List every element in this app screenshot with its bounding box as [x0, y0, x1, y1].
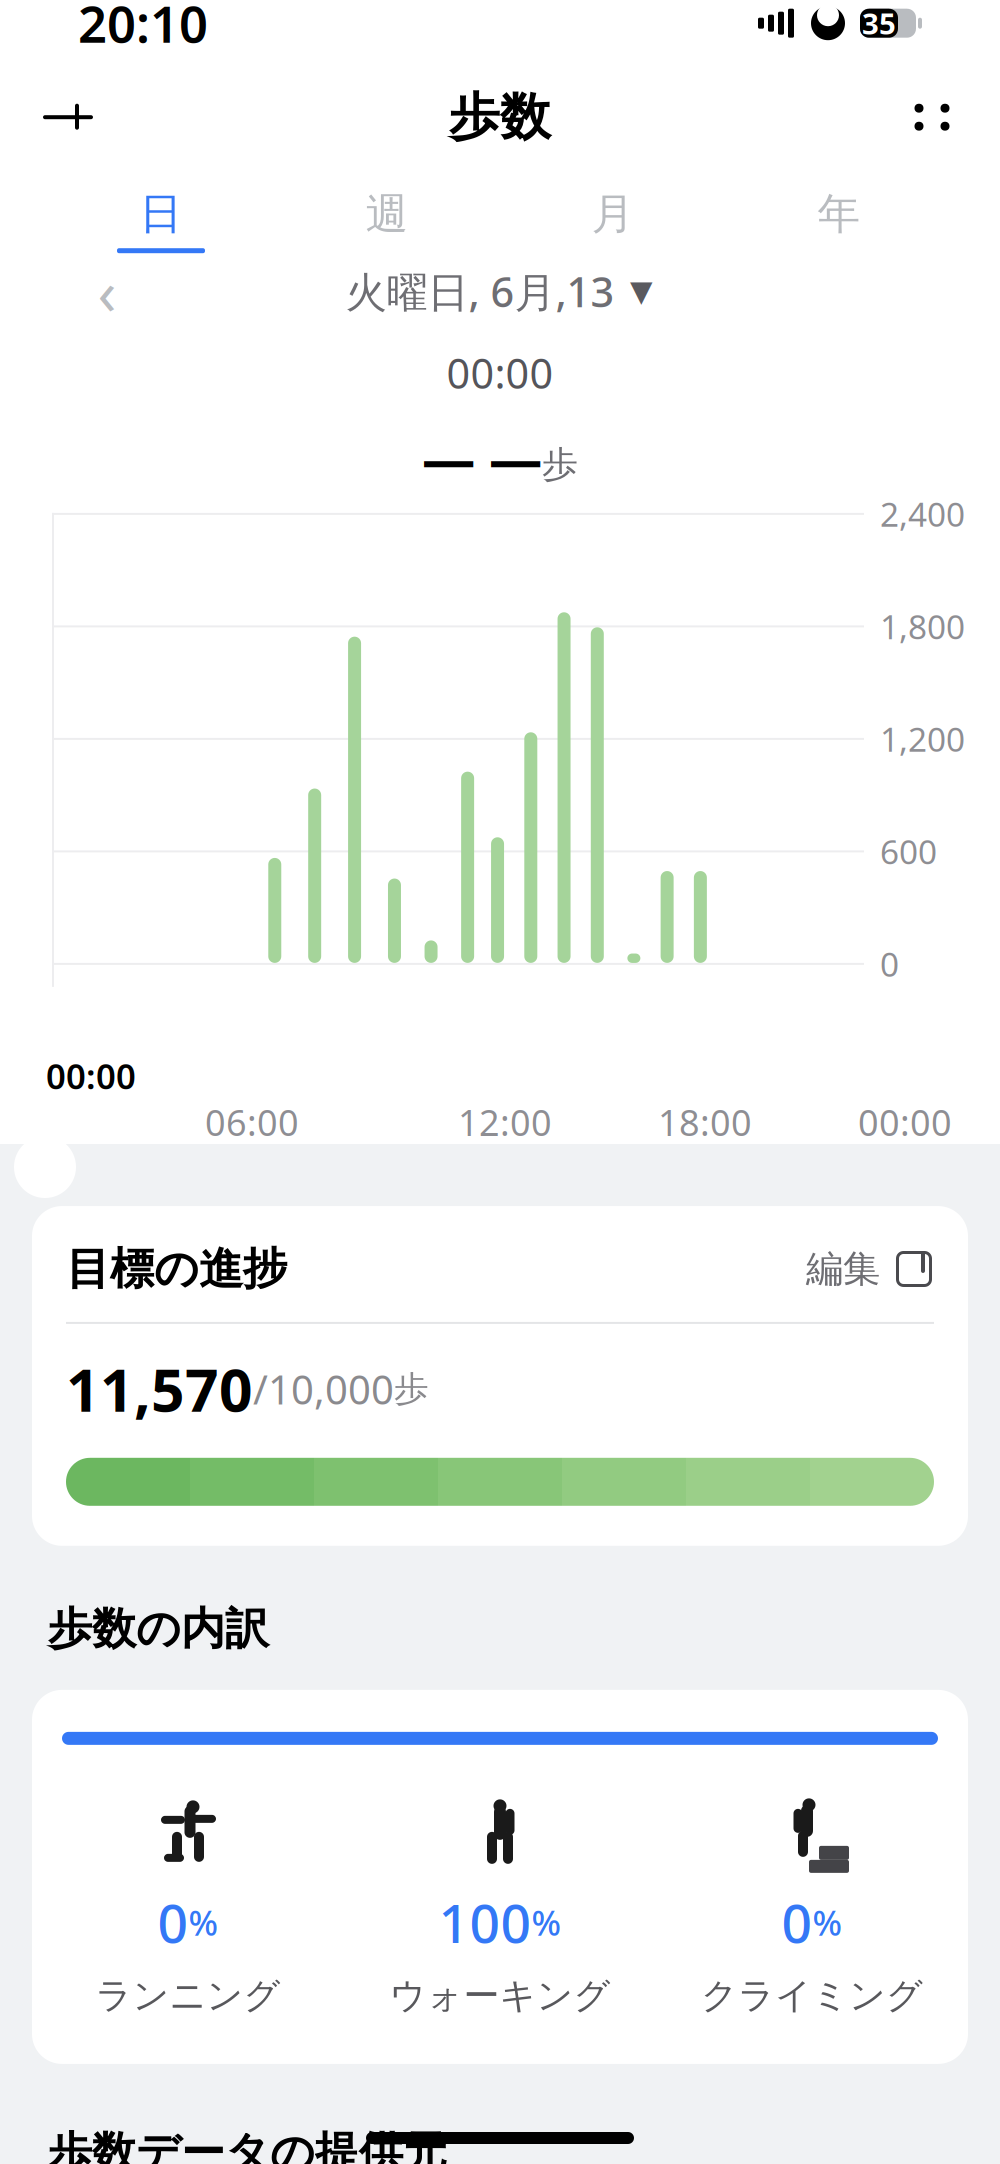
button[interactable]: 戻る [28, 77, 108, 157]
button[interactable]: 火曜日, 6月,13 [325, 256, 674, 326]
staticText: 火曜日, 6月,13 [345, 264, 614, 319]
staticText: 歩数データの提供元 [48, 2126, 447, 2164]
staticText: 編集 [806, 1246, 880, 1292]
staticText: 歩数 [449, 86, 551, 148]
staticText: 2,400 [880, 492, 965, 536]
staticText: 00:00 [46, 1053, 136, 1099]
staticText: 目標の進捗 [66, 1242, 287, 1296]
button[interactable]: 年 [726, 163, 952, 253]
staticText: 00:00 [446, 345, 553, 400]
staticText: 18:00 [658, 1098, 752, 1146]
staticText: — — [422, 422, 542, 493]
staticText: % [531, 1899, 561, 1945]
staticText: 00:00 [858, 1098, 952, 1146]
staticText: 06:00 [205, 1098, 299, 1146]
button[interactable]: その他のオプション [892, 77, 972, 157]
staticText: 年 [817, 188, 860, 240]
staticText: 12:00 [458, 1098, 552, 1146]
button[interactable]: 編集 [806, 1240, 934, 1298]
staticText: 0 [880, 942, 899, 986]
staticText: 日 [139, 188, 182, 240]
button[interactable]: 日 [48, 163, 274, 253]
staticText: % [812, 1899, 842, 1945]
staticText: 0 [781, 1887, 812, 1958]
staticText: 100 [438, 1887, 531, 1958]
staticText: 20:10 [78, 0, 208, 57]
staticText: ウォーキング [389, 1974, 610, 2018]
staticText: ランニング [95, 1974, 280, 2018]
staticText: 歩 [394, 1368, 429, 1410]
staticText: 歩数の内訳 [48, 1602, 269, 1656]
staticText: 月 [591, 188, 634, 240]
staticText: 1,200 [880, 717, 965, 761]
staticText: ▼ [630, 275, 653, 308]
staticText: クライミング [701, 1974, 923, 2018]
staticText: ‹ [97, 250, 116, 332]
staticText: 600 [880, 829, 937, 874]
staticText: % [188, 1899, 218, 1945]
staticText: 歩 [542, 442, 578, 487]
staticText: 1,800 [880, 604, 965, 649]
staticText: /10,000 [253, 1362, 394, 1415]
button[interactable]: 前の日 [72, 256, 142, 326]
button[interactable]: 週 [274, 163, 500, 253]
staticText: 35 [862, 4, 896, 43]
staticText: 11,570 [66, 1350, 253, 1428]
staticText: 週 [365, 188, 408, 240]
button[interactable]: 月 [500, 163, 726, 253]
staticText: 0 [157, 1887, 188, 1958]
